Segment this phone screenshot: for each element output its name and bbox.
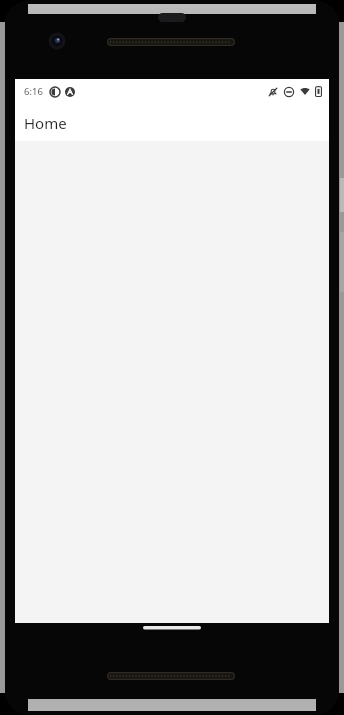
button[interactable]: Home — [15, 104, 329, 141]
staticText: Home — [24, 113, 67, 133]
staticText: 6:16 — [24, 85, 43, 98]
